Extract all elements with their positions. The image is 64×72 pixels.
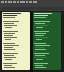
button[interactable]: Toolbar (0, 0, 64, 11)
button[interactable]: Original document (2, 12, 30, 70)
button[interactable]: Modified document (33, 12, 61, 70)
